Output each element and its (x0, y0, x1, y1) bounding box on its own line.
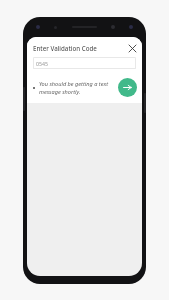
staticText: 0545 (36, 60, 48, 67)
button[interactable]: 0545 (33, 57, 136, 69)
staticText: You should be getting a text message sho… (39, 80, 115, 96)
staticText: Enter Validation Code (33, 44, 97, 52)
button[interactable]: Close (126, 42, 138, 54)
button[interactable]: Submit validation code (118, 78, 137, 97)
